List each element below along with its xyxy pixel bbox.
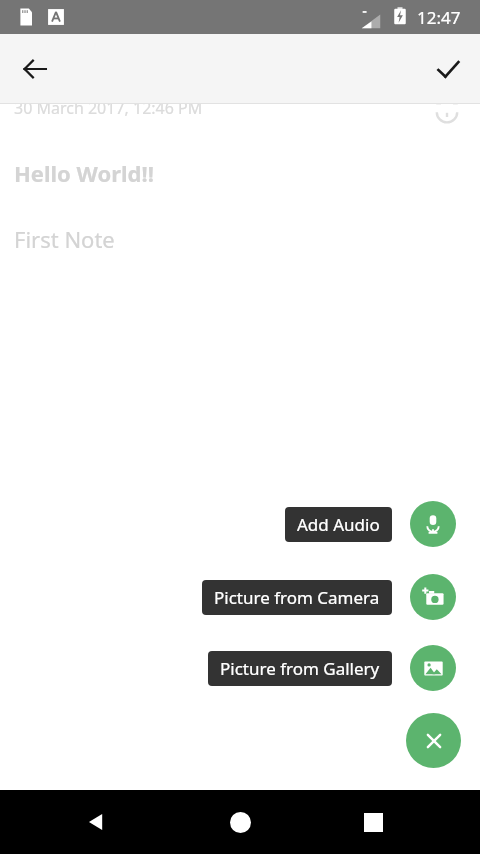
button[interactable]: Picture from Gallery — [208, 651, 392, 686]
button[interactable]: Recent apps — [355, 804, 391, 840]
button[interactable]: Reminder — [432, 93, 462, 123]
staticText: Picture from Camera — [214, 586, 380, 609]
button[interactable]: Back — [78, 804, 114, 840]
button[interactable]: Add Audio — [285, 507, 392, 542]
staticText: 30 March 2017, 12:46 PM — [14, 97, 203, 119]
staticText: Add Audio — [297, 513, 380, 536]
button[interactable]: Add Audio — [410, 501, 456, 547]
staticText: Hello World!! — [14, 158, 154, 188]
button[interactable]: Back — [11, 45, 59, 93]
button[interactable]: Home — [222, 804, 258, 840]
staticText: 12:47 — [417, 6, 461, 29]
button[interactable]: Save — [424, 45, 472, 93]
button[interactable]: Close menu — [406, 713, 461, 768]
button[interactable]: Picture from Gallery — [410, 645, 456, 691]
button[interactable]: Picture from Camera — [202, 580, 392, 615]
staticText: Picture from Gallery — [220, 657, 380, 680]
staticText: First Note — [14, 224, 115, 254]
button[interactable]: Picture from Camera — [410, 574, 456, 620]
